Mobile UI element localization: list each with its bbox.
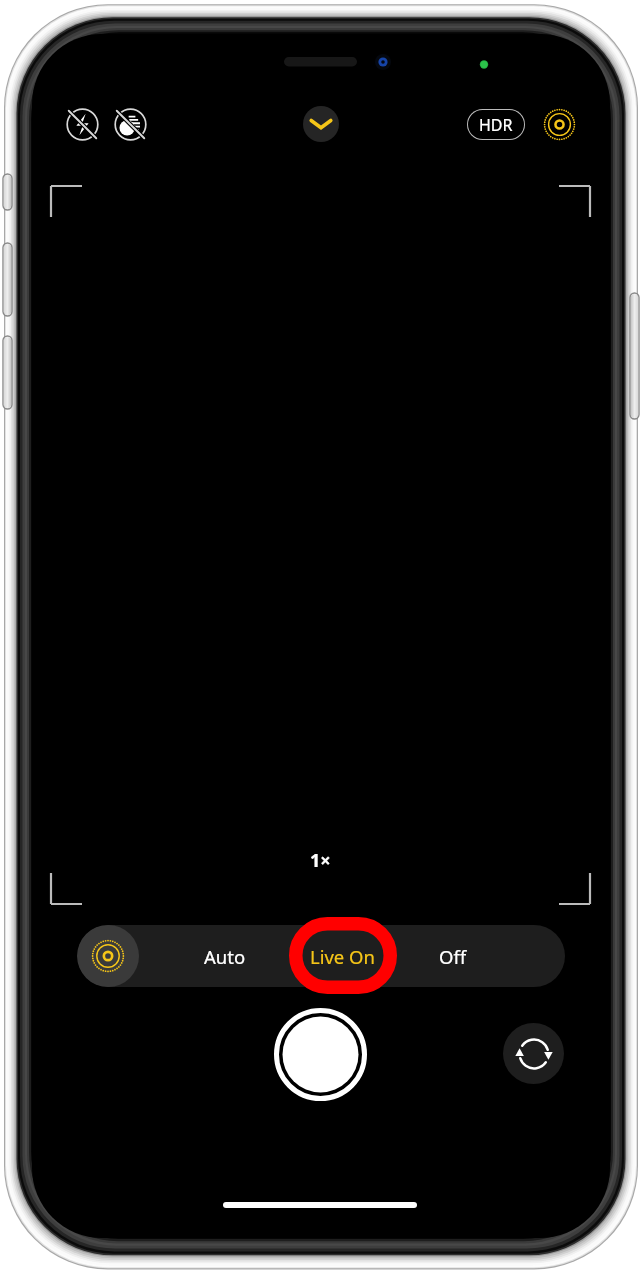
staticText: Live On <box>310 944 375 969</box>
button[interactable]: More options <box>303 106 339 142</box>
button[interactable]: Switch camera <box>503 1023 564 1084</box>
staticText: Off <box>439 944 467 969</box>
button[interactable]: Flash off <box>66 108 99 141</box>
staticText: HDR <box>479 114 513 136</box>
button[interactable]: Off <box>413 925 493 987</box>
button[interactable]: Live Photo <box>77 925 139 987</box>
staticText: Auto <box>204 944 246 969</box>
button[interactable]: Live On <box>297 925 387 987</box>
button[interactable]: Live Photo on <box>543 108 576 141</box>
button[interactable]: Shutter <box>274 1008 367 1101</box>
staticText: 1× <box>310 848 331 872</box>
button[interactable]: Auto <box>185 925 265 987</box>
button[interactable]: Night mode off <box>114 108 147 141</box>
button[interactable]: HDR <box>467 109 525 140</box>
